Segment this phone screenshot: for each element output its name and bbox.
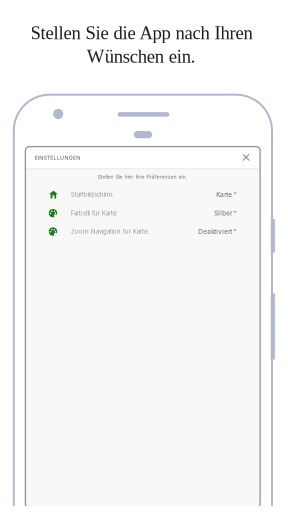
staticText: Stellen Sie die App nach Ihren [30,23,252,43]
button[interactable]: Startbildschirm: [45,185,241,204]
staticText: Deaktiviert [198,228,232,235]
staticText: Stellen Sie hier Ihre Präferenzen ein. [98,174,188,180]
staticText: Karte [216,191,232,198]
staticText: Farbstil für Karte: [71,210,118,217]
staticText: Wünschen ein. [87,46,196,67]
staticText: Zoom-Navigation für Karte: [71,228,149,235]
button[interactable]: Farbstil für Karte: [45,204,241,222]
staticText: Silber [214,209,232,217]
staticText: EINSTELLUNGEN [35,155,80,161]
button[interactable]: Schließen [239,150,253,164]
button[interactable]: Zoom-Navigation für Karte: [45,222,241,241]
staticText: Startbildschirm: [71,191,114,198]
